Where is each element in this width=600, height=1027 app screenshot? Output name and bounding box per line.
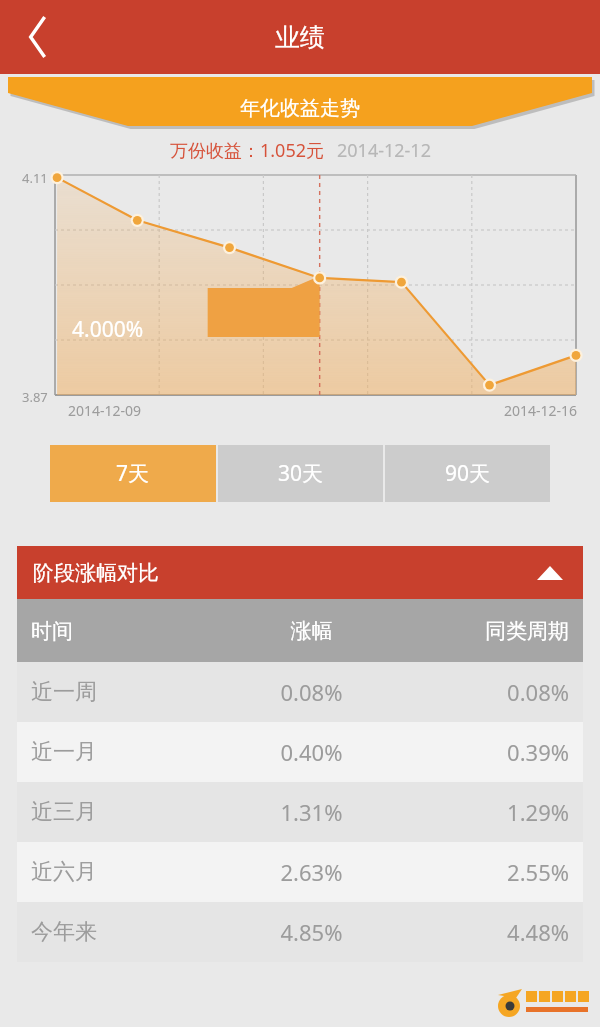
staticText: 0.08%: [416, 677, 569, 707]
staticText: 4.85%: [235, 917, 388, 947]
staticText: 3.87: [22, 388, 48, 406]
button[interactable]: 近六月: [17, 842, 583, 902]
staticText: 1.31%: [235, 797, 388, 827]
button[interactable]: 7天: [50, 445, 216, 502]
staticText: 时间: [31, 618, 207, 644]
staticText: 近一月: [31, 738, 207, 766]
staticText: 2014-12-12: [337, 138, 431, 163]
staticText: 4.11: [22, 169, 48, 187]
staticText: 今年来: [31, 918, 207, 946]
staticText: 近六月: [31, 858, 207, 886]
staticText: 4.48%: [416, 917, 569, 947]
staticText: 30天: [278, 459, 324, 488]
staticText: 2.55%: [416, 857, 569, 887]
button[interactable]: 近一周: [17, 662, 583, 722]
staticText: 业绩: [275, 22, 325, 53]
staticText: 同类周期: [416, 618, 569, 644]
staticText: 0.08%: [235, 677, 388, 707]
button[interactable]: 今年来: [17, 902, 583, 962]
button[interactable]: 近三月: [17, 782, 583, 842]
staticText: 1.29%: [416, 797, 569, 827]
staticText: 涨幅: [235, 618, 388, 644]
staticText: 万份收益：1.052元: [170, 138, 325, 163]
staticText: 90天: [445, 459, 491, 488]
button[interactable]: 阶段涨幅对比: [17, 546, 583, 599]
button[interactable]: 近一月: [17, 722, 583, 782]
staticText: 近三月: [31, 798, 207, 826]
staticText: 0.40%: [235, 737, 388, 767]
staticText: 近一周: [31, 678, 207, 706]
staticText: 年化收益走势: [240, 96, 360, 121]
button[interactable]: Back: [4, 8, 62, 66]
staticText: 阶段涨幅对比: [33, 560, 159, 586]
button[interactable]: 30天: [218, 445, 383, 502]
staticText: 2014-12-09: [68, 401, 142, 420]
staticText: 2.63%: [235, 857, 388, 887]
staticText: 0.39%: [416, 737, 569, 767]
staticText: 4.000%: [72, 315, 144, 344]
staticText: 7天: [116, 459, 150, 488]
staticText: 2014-12-16: [504, 401, 578, 420]
button[interactable]: 90天: [385, 445, 550, 502]
